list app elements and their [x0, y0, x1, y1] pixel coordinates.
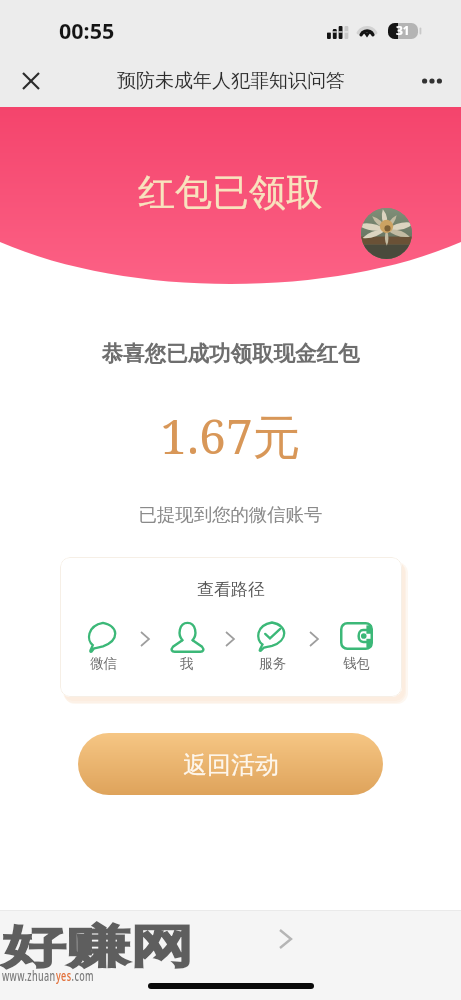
- staticText: 红包已领取: [0, 169, 461, 216]
- staticText: www.zhuan: [2, 965, 56, 985]
- staticText: .com: [72, 965, 94, 985]
- staticText: 我: [180, 655, 194, 672]
- button[interactable]: More options: [415, 64, 449, 98]
- button[interactable]: Next: [268, 922, 302, 956]
- staticText: 1.67元: [0, 403, 461, 469]
- staticText: 查看路径: [60, 579, 402, 600]
- staticText: 预防未成年人犯罪知识问答: [117, 69, 345, 93]
- staticText: 钱包: [343, 655, 370, 672]
- button[interactable]: 查看路径: [60, 557, 402, 697]
- staticText: 返回活动: [183, 750, 279, 780]
- button[interactable]: 返回活动: [78, 733, 383, 795]
- staticText: 微信: [90, 655, 117, 672]
- staticText: 31: [396, 22, 410, 38]
- staticText: 已提现到您的微信账号: [0, 503, 461, 526]
- staticText: 好赚网: [2, 919, 194, 976]
- button[interactable]: Close: [14, 64, 48, 98]
- staticText: 00:55: [59, 16, 115, 45]
- staticText: 恭喜您已成功领取现金红包: [0, 340, 461, 367]
- staticText: yes: [56, 965, 72, 985]
- staticText: 服务: [259, 655, 286, 672]
